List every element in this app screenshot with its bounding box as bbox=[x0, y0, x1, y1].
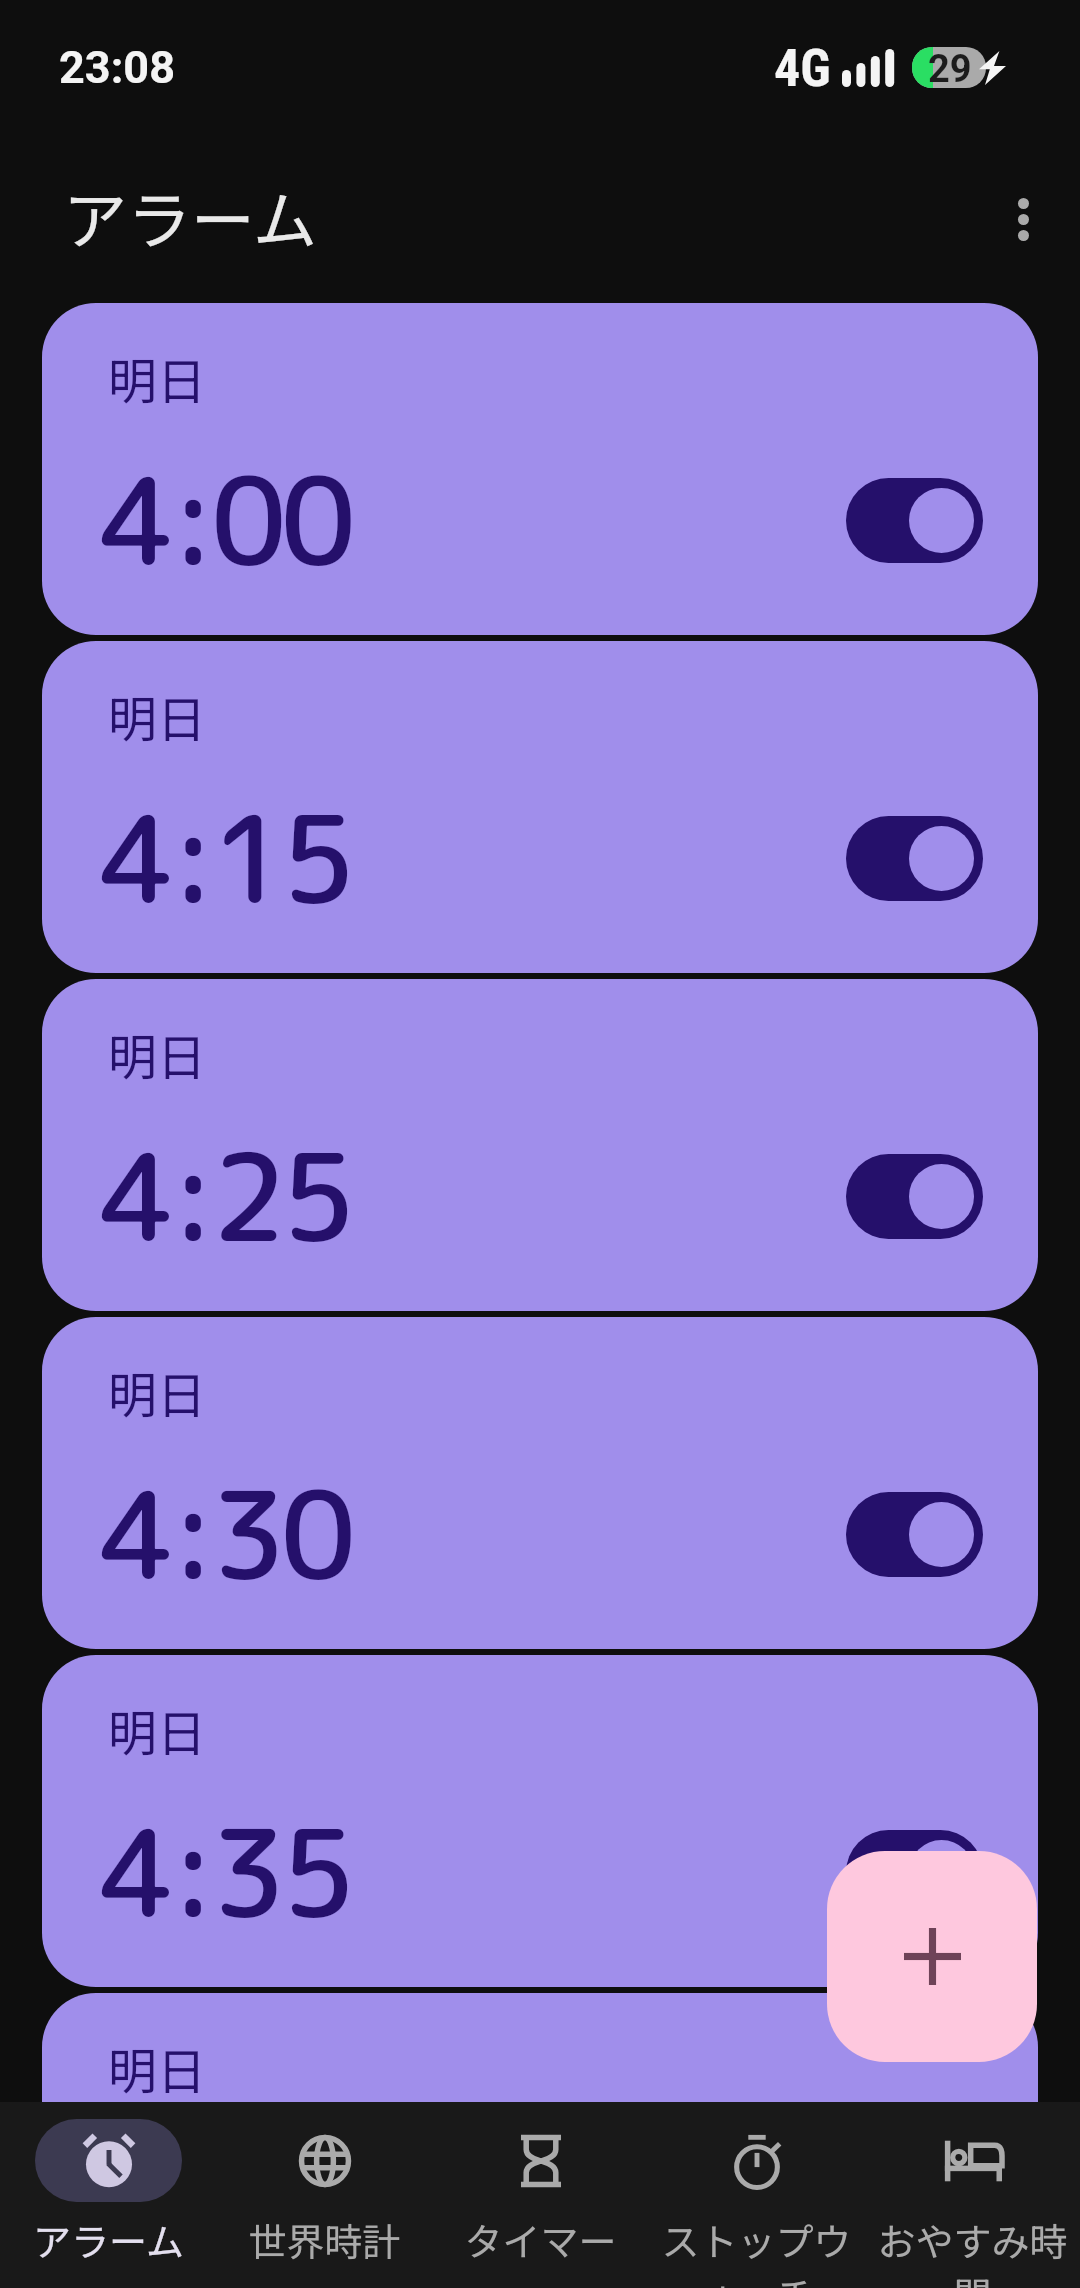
button[interactable]: アラーム bbox=[0, 2102, 216, 2288]
staticText: アラーム bbox=[33, 2212, 184, 2267]
staticText: 4:30 bbox=[100, 1450, 351, 1617]
staticText: 明日 bbox=[108, 2032, 207, 2102]
button[interactable]: その他のオプション bbox=[968, 164, 1078, 274]
button[interactable]: アラームのオン・オフ bbox=[846, 1154, 983, 1239]
staticText: 29 bbox=[928, 47, 972, 88]
staticText: 4:00 bbox=[100, 436, 351, 603]
staticText: 明日 bbox=[108, 1694, 207, 1765]
button[interactable]: アラームのオン・オフ bbox=[846, 1492, 983, 1577]
staticText: 4G bbox=[774, 38, 831, 99]
staticText: おやすみ時 間 bbox=[877, 2212, 1068, 2288]
staticText: 明日 bbox=[108, 680, 207, 751]
staticText: 4:25 bbox=[100, 1112, 351, 1279]
staticText: 明日 bbox=[108, 1018, 207, 1089]
button[interactable]: 明日 bbox=[42, 1317, 1038, 1649]
staticText: 4:15 bbox=[100, 774, 351, 941]
button[interactable]: 明日 bbox=[42, 979, 1038, 1311]
button[interactable]: 明日 bbox=[42, 1655, 1038, 1987]
button[interactable]: ストップウ ォッチ bbox=[648, 2102, 864, 2288]
button[interactable]: アラームを追加 bbox=[827, 1851, 1037, 2062]
button[interactable]: おやすみ時 間 bbox=[864, 2102, 1080, 2288]
staticText: 4:35 bbox=[100, 1788, 351, 1955]
button[interactable]: タイマー bbox=[432, 2102, 648, 2288]
button[interactable]: 明日 bbox=[42, 303, 1038, 635]
staticText: 明日 bbox=[108, 1356, 207, 1427]
button[interactable]: 明日 bbox=[42, 1993, 1038, 2102]
staticText: タイマー bbox=[464, 2212, 617, 2267]
button[interactable]: アラームのオン・オフ bbox=[846, 478, 983, 563]
staticText: 23:08 bbox=[59, 41, 175, 94]
button[interactable]: アラームのオン・オフ bbox=[846, 1830, 983, 1915]
button[interactable]: アラームのオン・オフ bbox=[846, 816, 983, 901]
button[interactable]: 明日 bbox=[42, 641, 1038, 973]
staticText: ストップウ ォッチ bbox=[661, 2212, 852, 2288]
staticText: 明日 bbox=[108, 342, 207, 413]
button[interactable]: 世界時計 bbox=[216, 2102, 432, 2288]
staticText: 世界時計 bbox=[248, 2212, 401, 2267]
staticText: アラーム bbox=[63, 170, 318, 263]
